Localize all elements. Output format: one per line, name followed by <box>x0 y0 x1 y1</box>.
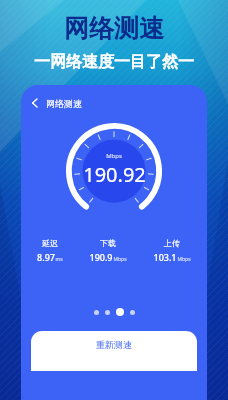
other: Back <box>28 96 42 110</box>
staticText: 网络测速 <box>64 13 164 44</box>
button[interactable]: Back <box>21 94 207 112</box>
staticText: Mbps <box>177 256 191 263</box>
staticText: 190.92 <box>83 161 146 188</box>
staticText: 网络测速 <box>46 98 82 109</box>
staticText: Mbps <box>113 256 127 263</box>
staticText: Mbps <box>106 152 122 160</box>
staticText: 上传 <box>164 238 180 248</box>
staticText: 103.1 <box>153 251 177 263</box>
staticText: 一网络速度一目了然一 <box>34 52 194 72</box>
button[interactable]: 重新测速 <box>31 331 197 371</box>
staticText: 190.9 <box>89 251 113 263</box>
staticText: 重新测速 <box>96 339 132 350</box>
staticText: 下载 <box>100 238 116 248</box>
staticText: 延迟 <box>42 238 58 248</box>
staticText: ms <box>55 256 63 263</box>
staticText: 8.97 <box>37 251 55 263</box>
